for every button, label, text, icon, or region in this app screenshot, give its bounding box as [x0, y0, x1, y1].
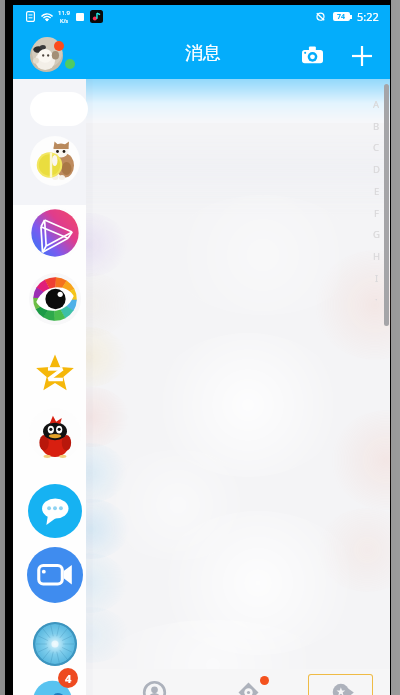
- staticText: 4: [65, 671, 72, 686]
- staticText: A: [373, 98, 380, 111]
- button[interactable]: Profile: [295, 669, 389, 695]
- button[interactable]: App 9: [34, 674, 76, 695]
- staticText: 11.9: [58, 9, 70, 17]
- staticText: B: [373, 120, 380, 133]
- button[interactable]: App 7: [27, 547, 83, 603]
- staticText: E: [374, 185, 380, 198]
- button[interactable]: Profile: [30, 39, 63, 72]
- staticText: F: [374, 207, 379, 220]
- staticText: I: [375, 272, 379, 285]
- staticText: 消息: [185, 42, 221, 65]
- button[interactable]: App 5: [29, 408, 81, 460]
- button[interactable]: App 8: [33, 622, 77, 666]
- staticText: D: [373, 163, 380, 176]
- button[interactable]: App 6: [28, 484, 82, 538]
- button[interactable]: Add: [345, 39, 378, 72]
- button[interactable]: App 4: [33, 350, 77, 394]
- staticText: K/s: [60, 17, 69, 24]
- staticText: H: [373, 250, 381, 263]
- button[interactable]: App 1: [30, 136, 80, 186]
- button[interactable]: Search: [30, 92, 88, 126]
- staticText: ·: [375, 293, 378, 306]
- button[interactable]: App 2: [29, 207, 81, 259]
- staticText: 74: [337, 12, 346, 21]
- button[interactable]: App 3: [29, 273, 81, 325]
- button[interactable]: Contacts: [107, 669, 201, 695]
- staticText: 5:22: [357, 9, 379, 24]
- staticText: G: [373, 228, 380, 241]
- button[interactable]: Messages: [13, 669, 107, 695]
- button[interactable]: Discover: [201, 669, 295, 695]
- button[interactable]: Camera: [296, 39, 328, 71]
- staticText: C: [373, 141, 380, 154]
